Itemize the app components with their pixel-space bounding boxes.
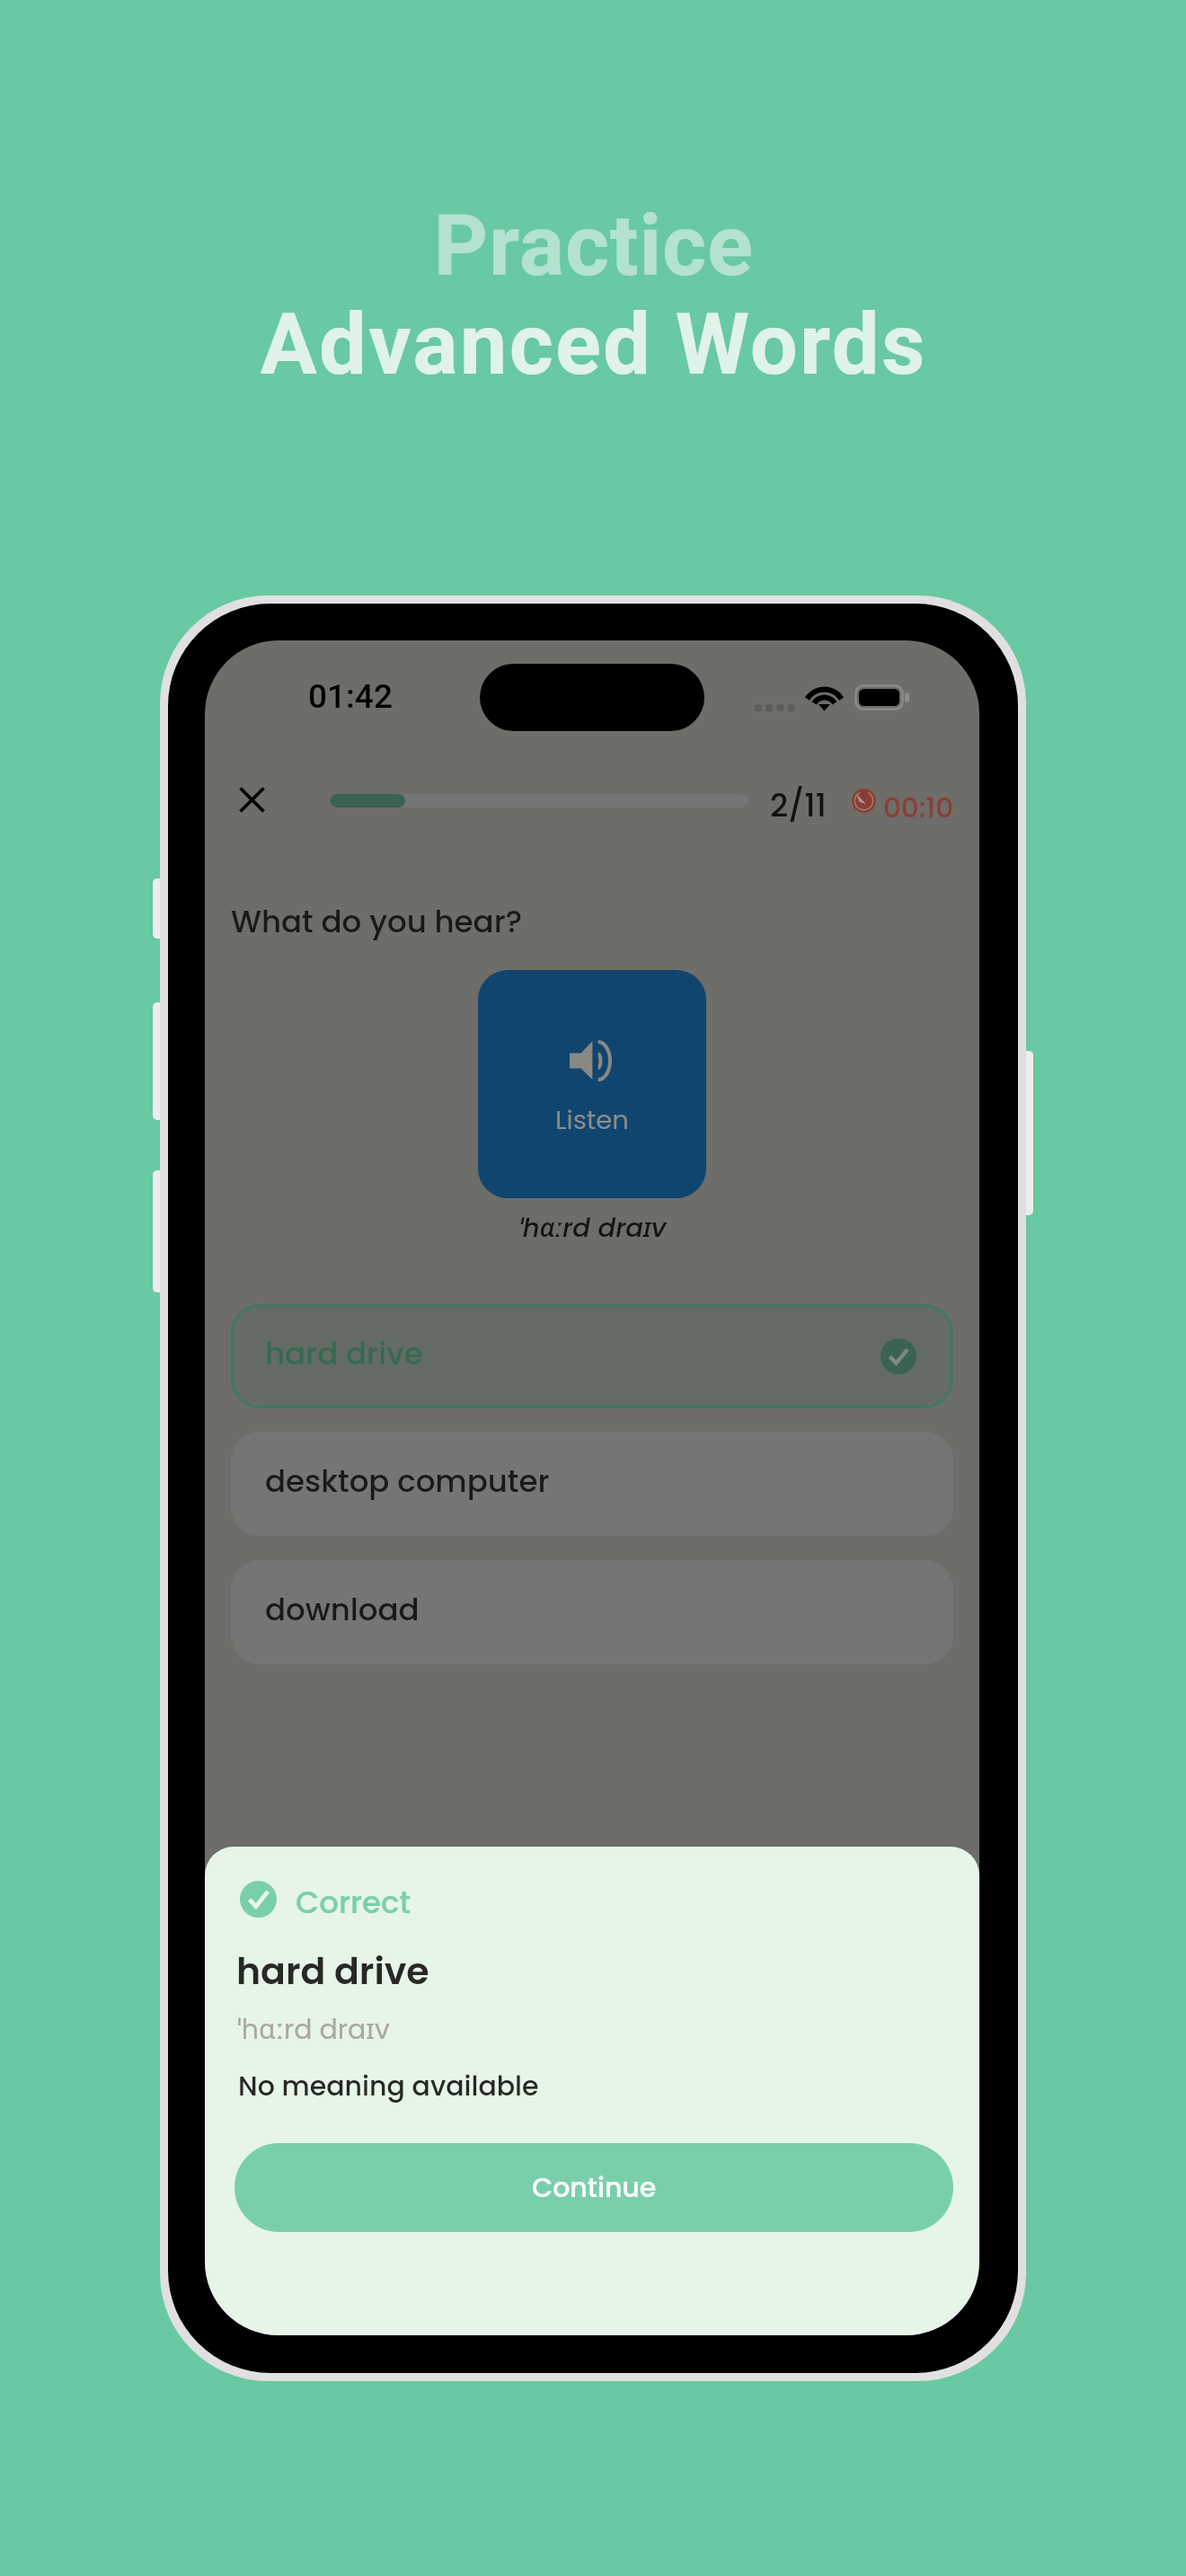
staticText: 01:42 — [308, 677, 393, 716]
staticText: download — [265, 1588, 420, 1631]
staticText: Practice — [433, 197, 754, 296]
staticText: Correct — [296, 1881, 412, 1924]
staticText: Listen — [555, 1102, 629, 1139]
staticText: desktop computer — [265, 1460, 550, 1503]
staticText: hard drive — [265, 1332, 423, 1375]
staticText: hard drive — [236, 1945, 429, 1997]
button[interactable]: download — [231, 1560, 953, 1664]
staticText: 2/11 — [770, 783, 827, 827]
staticText: Continue — [532, 2169, 657, 2207]
staticText: What do you hear? — [231, 900, 522, 943]
button[interactable]: hard drive — [231, 1304, 953, 1408]
button[interactable]: desktop computer — [231, 1432, 953, 1536]
staticText: ˈhɑːrd draɪv — [237, 2010, 390, 2049]
button[interactable]: Listen — [478, 970, 706, 1198]
staticText: No meaning available — [238, 2068, 539, 2105]
staticText: Advanced Words — [260, 296, 927, 394]
button[interactable]: Continue — [235, 2143, 953, 2232]
button[interactable]: Close — [218, 766, 286, 834]
staticText: ˈhɑːrd draɪv — [518, 1209, 667, 1246]
staticText: 00:10 — [883, 788, 954, 826]
